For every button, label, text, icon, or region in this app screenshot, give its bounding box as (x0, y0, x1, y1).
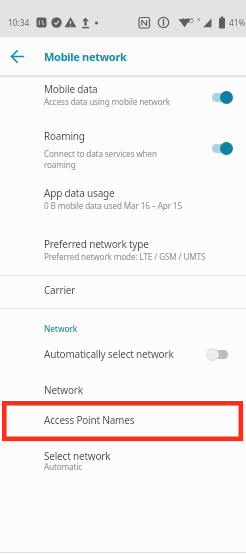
staticText: × (197, 15, 201, 24)
staticText: 4G5 (181, 16, 195, 26)
staticText: 10:34 (8, 17, 30, 28)
staticText: Roaming (44, 129, 85, 143)
staticText: Network (44, 383, 83, 397)
staticText: Preferred network type (44, 237, 149, 251)
button[interactable] (0, 37, 38, 75)
button[interactable] (0, 73, 246, 113)
button[interactable] (0, 338, 246, 378)
staticText: App data usage (44, 186, 115, 200)
staticText: Preferred network mode: LTE / GSM / UMTS (44, 251, 206, 262)
button[interactable] (0, 228, 246, 268)
staticText: Network (44, 323, 78, 334)
staticText: Carrier (44, 283, 76, 297)
button[interactable] (206, 141, 233, 155)
button[interactable] (0, 177, 246, 217)
staticText: Select network (44, 449, 111, 463)
button[interactable] (0, 374, 246, 414)
button[interactable] (0, 274, 246, 314)
staticText: 0 B mobile data used Mar 16 – Apr 15 (44, 200, 182, 211)
staticText: Connect to data services when roaming (44, 148, 157, 170)
staticText: 41% (229, 17, 246, 28)
button[interactable] (0, 404, 246, 444)
button[interactable] (206, 90, 233, 104)
staticText: Access Point Names (44, 413, 135, 427)
button[interactable] (0, 120, 246, 160)
button[interactable] (0, 440, 246, 480)
button[interactable] (206, 347, 233, 361)
staticText: Mobile data (44, 82, 98, 96)
staticText: Access data using mobile network (44, 96, 170, 107)
staticText: Automatically select network (44, 347, 174, 361)
staticText: Mobile network (44, 49, 127, 64)
staticText: Automatic (44, 461, 83, 472)
